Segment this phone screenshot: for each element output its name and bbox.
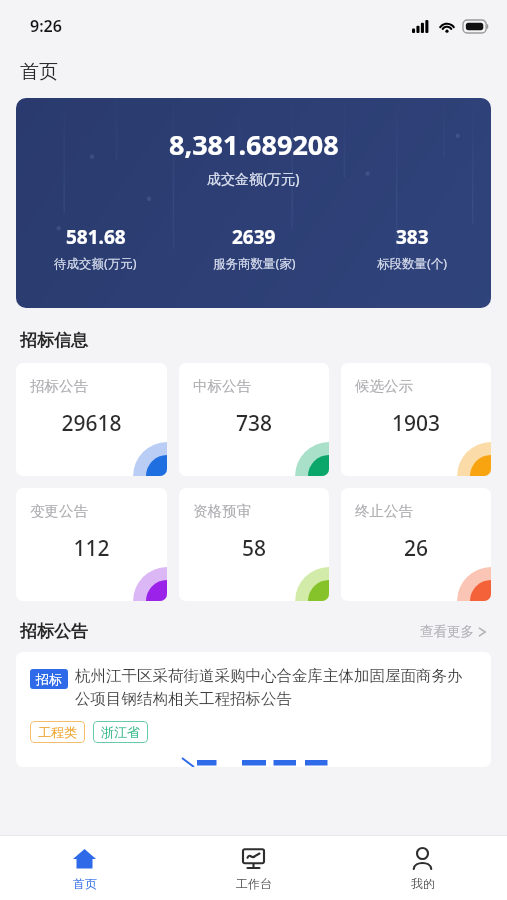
staticText: 2639 bbox=[232, 224, 276, 250]
staticText: 资格预审 bbox=[193, 502, 251, 520]
staticText: 58 bbox=[179, 534, 329, 563]
staticText: 中标公告 bbox=[193, 377, 251, 395]
staticText: 工程类 bbox=[38, 724, 77, 740]
button[interactable]: 我的 bbox=[338, 836, 507, 900]
staticText: 8,381.689208 bbox=[169, 126, 339, 163]
staticText: 9:26 bbox=[30, 15, 62, 37]
staticText: 581.68 bbox=[66, 224, 126, 250]
staticText: 服务商数量(家) bbox=[213, 255, 296, 272]
staticText: 383 bbox=[396, 224, 429, 250]
button[interactable]: 终止公告 bbox=[341, 488, 491, 601]
button[interactable]: 首页 bbox=[0, 836, 169, 900]
button[interactable]: 资格预审 bbox=[179, 488, 329, 601]
staticText: 招标 bbox=[36, 671, 62, 687]
button[interactable]: 候选公示 bbox=[341, 363, 491, 476]
button[interactable]: 中标公告 bbox=[179, 363, 329, 476]
staticText: 738 bbox=[179, 409, 329, 438]
staticText: 终止公告 bbox=[355, 502, 413, 520]
staticText: 招标公告 bbox=[30, 377, 88, 395]
staticText: 查看更多 bbox=[420, 623, 474, 640]
staticText: 工作台 bbox=[236, 876, 272, 891]
staticText: 29618 bbox=[16, 409, 167, 438]
staticText: 我的 bbox=[411, 876, 435, 891]
button[interactable]: 变更公告 bbox=[16, 488, 167, 601]
staticText: 26 bbox=[341, 534, 491, 563]
staticText: 成交金额(万元) bbox=[207, 169, 300, 188]
staticText: 变更公告 bbox=[30, 502, 88, 520]
staticText: 首页 bbox=[20, 60, 58, 84]
staticText: 招标信息 bbox=[20, 330, 88, 351]
staticText: 标段数量(个) bbox=[377, 255, 448, 272]
button[interactable]: 查看更多 bbox=[420, 623, 487, 640]
button[interactable]: 工作台 bbox=[169, 836, 338, 900]
staticText: 候选公示 bbox=[355, 377, 413, 395]
staticText: 首页 bbox=[73, 876, 97, 891]
staticText: 待成交额(万元) bbox=[54, 255, 137, 272]
staticText: 112 bbox=[16, 534, 167, 563]
button[interactable]: 招标 bbox=[16, 652, 491, 767]
button[interactable]: 8,381.689208 bbox=[16, 98, 491, 308]
staticText: 杭州江干区采荷街道采购中心合金库主体加固屋面商务办公项目钢结构相关工程招标公告 bbox=[75, 666, 477, 709]
staticText: 招标公告 bbox=[20, 621, 88, 642]
button[interactable]: 招标公告 bbox=[16, 363, 167, 476]
staticText: 浙江省 bbox=[101, 724, 140, 740]
staticText: 1903 bbox=[341, 409, 491, 438]
